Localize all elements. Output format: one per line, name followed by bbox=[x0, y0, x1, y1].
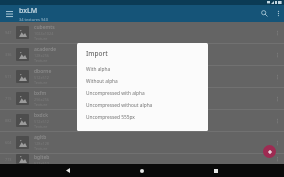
button[interactable]: Search bbox=[257, 5, 272, 22]
staticText: Texture bbox=[34, 124, 48, 129]
button[interactable]: More options bbox=[272, 5, 284, 22]
staticText: 34 textures 940 bbox=[19, 17, 48, 22]
staticText: Uncompressed without alpha bbox=[86, 102, 153, 109]
button[interactable]: Recent apps bbox=[179, 164, 253, 177]
staticText: 604 bbox=[5, 140, 12, 145]
staticText: dborne bbox=[34, 68, 52, 75]
staticText: 1024x1024 bbox=[34, 31, 54, 36]
button[interactable]: 336 bbox=[0, 44, 284, 65]
staticText: 512x512 bbox=[34, 75, 50, 80]
button[interactable]: 773 bbox=[0, 154, 284, 164]
staticText: bxdck bbox=[34, 112, 48, 119]
staticText: 336 bbox=[5, 52, 12, 57]
button[interactable]: Home bbox=[105, 164, 179, 177]
staticText: 512x512 bbox=[34, 119, 50, 124]
button[interactable]: Item options bbox=[270, 154, 284, 164]
staticText: 128x256 bbox=[34, 53, 50, 58]
staticText: 511 bbox=[5, 74, 12, 79]
button[interactable]: Open navigation drawer bbox=[0, 5, 19, 22]
staticText: bxfm bbox=[34, 90, 47, 97]
staticText: acaderde bbox=[34, 46, 57, 53]
staticText: cubemts bbox=[34, 24, 55, 31]
staticText: Uncompressed with alpha bbox=[86, 90, 145, 97]
button[interactable]: 511 bbox=[0, 66, 284, 87]
button[interactable]: Uncompressed 555px bbox=[77, 111, 208, 123]
staticText: Texture bbox=[34, 102, 48, 107]
button[interactable]: 947 bbox=[0, 22, 284, 43]
button[interactable]: Back bbox=[31, 164, 105, 177]
staticText: 773 bbox=[5, 157, 12, 162]
button[interactable]: 882 bbox=[0, 110, 284, 131]
staticText: 128x128 bbox=[34, 141, 50, 146]
staticText: 882 bbox=[5, 118, 12, 123]
button[interactable]: Uncompressed with alpha bbox=[77, 87, 208, 99]
button[interactable]: 715 bbox=[0, 88, 284, 109]
button[interactable]: Uncompressed without alpha bbox=[77, 99, 208, 111]
staticText: 715 bbox=[5, 96, 12, 101]
staticText: Texture bbox=[34, 146, 48, 151]
staticText: bxLM bbox=[19, 6, 38, 16]
button[interactable]: With alpha bbox=[77, 63, 208, 75]
staticText: Texture bbox=[34, 36, 48, 41]
button[interactable]: 604 bbox=[0, 132, 284, 153]
staticText: 512x512 bbox=[34, 161, 50, 164]
staticText: Texture bbox=[34, 58, 48, 63]
staticText: 947 bbox=[5, 30, 12, 35]
button[interactable]: Without alpha bbox=[77, 75, 208, 87]
staticText: With alpha bbox=[86, 66, 111, 73]
button[interactable]: Add bbox=[263, 145, 276, 158]
staticText: Without alpha bbox=[86, 78, 118, 85]
staticText: 256x256 bbox=[34, 97, 50, 102]
staticText: Texture bbox=[34, 80, 48, 85]
staticText: bglteb bbox=[34, 154, 50, 161]
staticText: agltb bbox=[34, 134, 47, 141]
staticText: Uncompressed 555px bbox=[86, 114, 135, 121]
button[interactable]: Item options bbox=[270, 132, 284, 153]
staticText: Import bbox=[86, 49, 108, 58]
